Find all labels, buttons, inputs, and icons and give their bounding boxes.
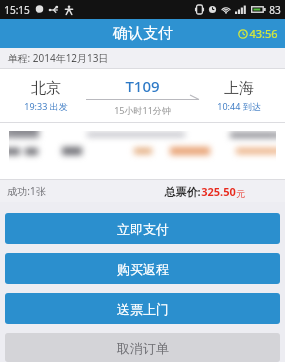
staticText: 19:33 出发 [24,100,68,112]
staticText: 确认支付 [113,24,173,43]
button[interactable]: 立即支付 [5,213,280,244]
staticText: 43:56 [249,26,278,41]
staticText: 上海 [224,79,254,98]
staticText: 送票上门 [117,301,169,317]
staticText: 325.50 [201,184,236,199]
staticText: 单程: 2014年12月13日 [7,51,109,65]
staticText: 15:15 [4,3,30,17]
staticText: 取消订单 [117,340,169,356]
staticText: 成功:1张 [7,184,46,198]
staticText: 10:44 到达 [217,100,261,112]
button[interactable]: 取消订单 [5,333,280,362]
staticText: 15小时11分钟 [114,104,171,116]
staticText: 总票价: [164,184,201,199]
staticText: T109 [125,76,160,96]
staticText: 元 [236,188,245,199]
button[interactable]: 购买返程 [5,253,280,284]
staticText: 83 [269,3,281,17]
button[interactable]: 送票上门 [5,293,280,324]
staticText: 北京 [31,79,61,98]
staticText: 立即支付 [117,221,169,237]
staticText: 购买返程 [117,261,169,277]
button[interactable]: Payment countdown timer [238,26,278,41]
